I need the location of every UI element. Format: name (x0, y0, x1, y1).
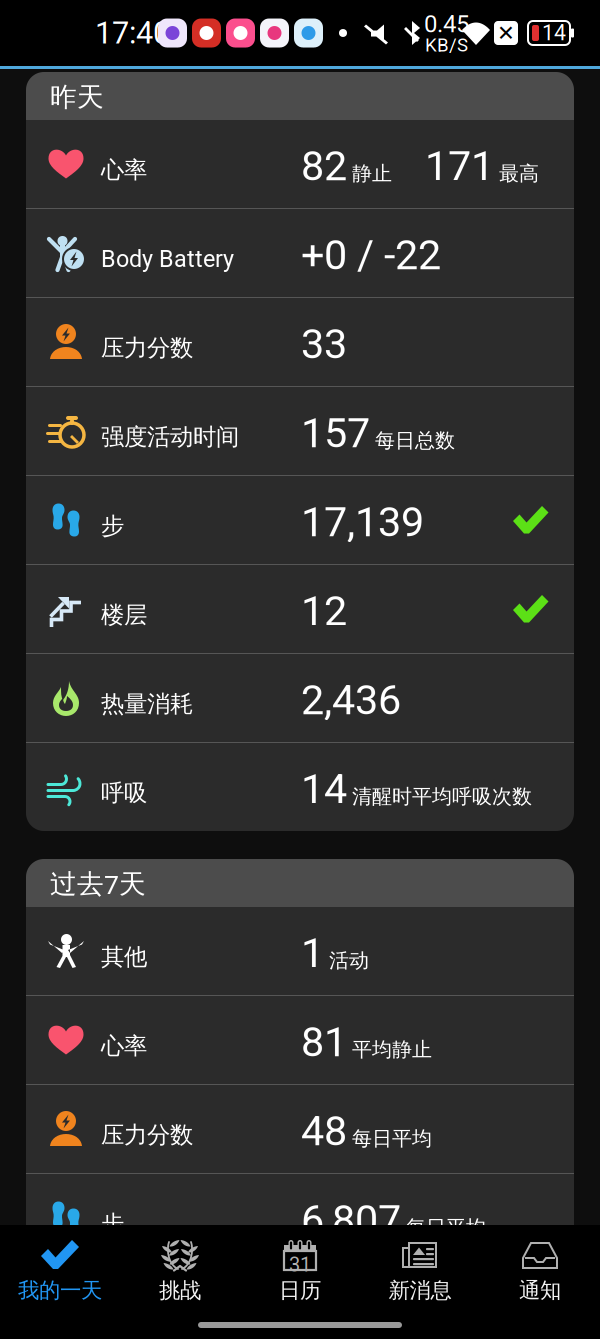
staticText: 最高 (499, 161, 539, 186)
staticText: 过去7天 (50, 867, 146, 901)
button[interactable]: 31 (240, 1225, 360, 1317)
staticText: 12 (301, 587, 347, 635)
staticText: ✕ (497, 21, 515, 45)
staticText: 步 (101, 511, 124, 541)
staticText: 33 (301, 320, 347, 368)
staticText: 我的一天 (18, 1277, 102, 1304)
staticText: 171 (425, 142, 494, 190)
staticText: 静止 (352, 161, 392, 186)
staticText: 呼吸 (101, 778, 147, 808)
staticText: Body Battery (101, 245, 234, 273)
staticText: 17:40 (95, 15, 170, 51)
button[interactable]: 挑战 (120, 1225, 240, 1317)
button[interactable]: 心率 (26, 120, 574, 208)
staticText: 楼层 (101, 600, 147, 630)
staticText: 活动 (329, 948, 369, 973)
staticText: 157 (301, 409, 370, 457)
staticText: 0.45 (424, 10, 469, 38)
staticText: 心率 (101, 1031, 147, 1061)
button[interactable]: 其他 (26, 907, 574, 995)
staticText: 强度活动时间 (101, 422, 239, 452)
staticText: 心率 (101, 155, 147, 185)
button[interactable]: 步 (26, 1174, 574, 1262)
staticText: KB/S (425, 34, 468, 56)
staticText: 热量消耗 (101, 689, 193, 719)
button[interactable]: 心率 (26, 996, 574, 1084)
staticText: 压力分数 (101, 333, 193, 363)
staticText: 每日平均 (352, 1126, 432, 1151)
staticText: 6,807 (301, 1196, 401, 1244)
staticText: 平均静止 (352, 1037, 432, 1062)
staticText: 每日总数 (375, 428, 455, 453)
button[interactable]: 我的一天 (0, 1225, 120, 1317)
button[interactable]: 呼吸 (26, 743, 574, 831)
staticText: 31 (289, 1253, 311, 1276)
staticText: 82 (301, 142, 347, 190)
staticText: 48 (301, 1107, 347, 1155)
staticText: 其他 (101, 942, 147, 972)
staticText: 每日平均 (406, 1215, 486, 1240)
button[interactable]: 压力分数 (26, 298, 574, 386)
staticText: 挑战 (159, 1277, 201, 1304)
staticText: 2,436 (301, 676, 401, 724)
staticText: 14 (301, 765, 347, 813)
staticText: 清醒时平均呼吸次数 (352, 784, 532, 809)
staticText: 通知 (519, 1277, 561, 1304)
staticText: 14 (542, 20, 566, 45)
button[interactable]: 强度活动时间 (26, 387, 574, 475)
button[interactable]: 楼层 (26, 565, 574, 653)
staticText: 步 (101, 1209, 124, 1239)
button[interactable]: 新消息 (360, 1225, 480, 1317)
button[interactable]: 通知 (480, 1225, 600, 1317)
staticText: 1 (301, 929, 324, 977)
button[interactable]: Body Battery (26, 209, 574, 297)
staticText: 81 (301, 1018, 347, 1066)
button[interactable]: 热量消耗 (26, 654, 574, 742)
staticText: +0 / -22 (301, 231, 441, 279)
staticText: 日历 (279, 1277, 321, 1304)
button[interactable]: 步 (26, 476, 574, 564)
staticText: 新消息 (388, 1277, 451, 1304)
staticText: 昨天 (50, 80, 104, 114)
staticText: 17,139 (301, 498, 424, 546)
button[interactable]: 压力分数 (26, 1085, 574, 1173)
staticText: 压力分数 (101, 1120, 193, 1150)
